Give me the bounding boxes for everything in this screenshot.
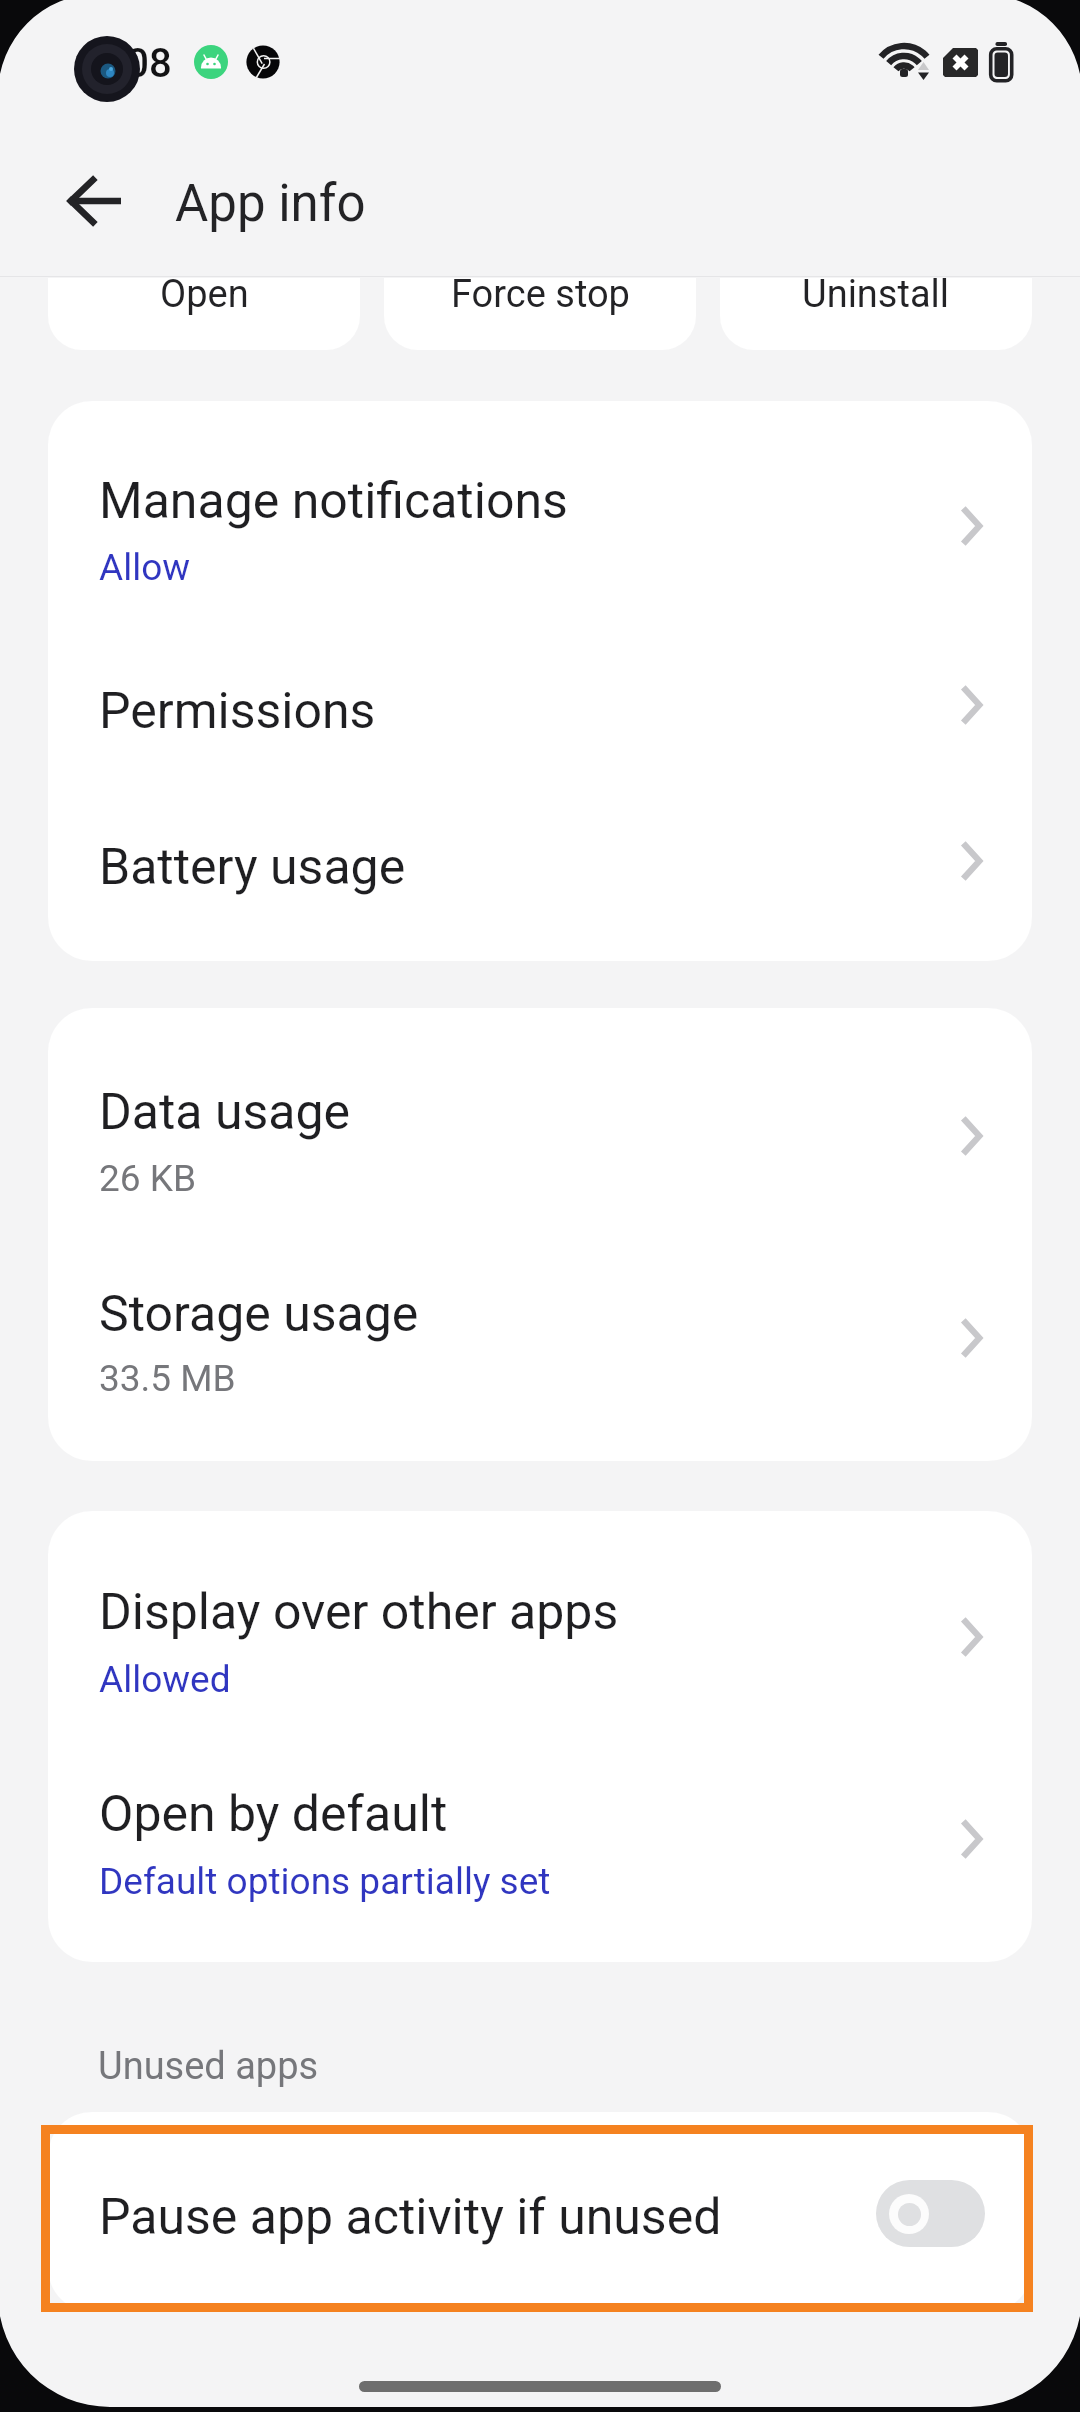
staticText: Data usage [99,1083,351,1142]
button[interactable] [0,1511,1080,1737]
staticText: Storage usage [99,1285,419,1344]
staticText: Uninstall [802,278,950,317]
staticText: Default options partially set [99,1860,551,1903]
button[interactable]: Force stop [384,278,696,350]
staticText: Force stop [451,278,630,317]
staticText: Unused apps [98,2044,319,2089]
staticText: 26 KB [99,1157,197,1200]
button[interactable]: Uninstall [720,278,1032,350]
staticText: Allowed [99,1658,231,1701]
staticText: 33.5 MB [99,1357,236,1400]
staticText: Pause app activity if unused [99,2188,722,2247]
staticText: App info [175,174,366,234]
staticText: Manage notifications [99,472,568,531]
button[interactable] [0,790,1080,961]
staticText: Open [160,278,249,317]
button[interactable] [0,635,1080,790]
staticText: 1:08 [93,40,172,87]
button[interactable] [0,1008,1080,1235]
button[interactable]: Pause app activity if unused [48,2112,1032,2312]
staticText: Allow [99,546,191,589]
button[interactable]: Back [50,170,142,234]
staticText: Display over other apps [99,1583,619,1642]
button[interactable] [0,401,1080,635]
button[interactable] [0,1737,1080,1962]
staticText: Battery usage [99,838,406,897]
staticText: Permissions [99,682,376,741]
button[interactable]: Open [48,278,360,350]
staticText: Open by default [99,1785,448,1844]
button[interactable] [0,1235,1080,1461]
